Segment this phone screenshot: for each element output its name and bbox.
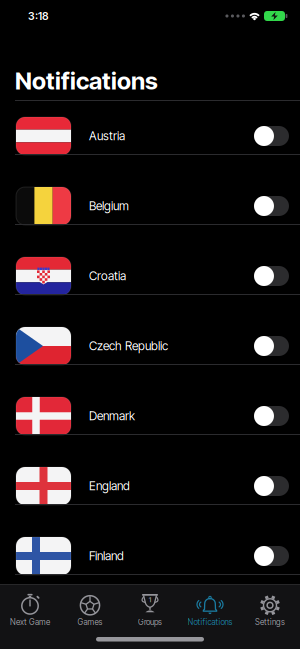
staticText: Notifications [15, 67, 158, 95]
staticText: 1 [149, 596, 152, 604]
button[interactable]: Croatia notifications [254, 266, 289, 286]
button[interactable]: Austria notifications [254, 126, 289, 146]
staticText: Czech Republic [89, 339, 168, 353]
button[interactable]: Finland notifications [254, 546, 289, 566]
staticText: Denmark [89, 409, 135, 423]
staticText: Notifications [187, 617, 232, 627]
button[interactable]: Notifications [180, 590, 240, 630]
staticText: Belgium [89, 199, 129, 213]
staticText: Groups [138, 617, 162, 627]
staticText: 3:18 [28, 10, 49, 22]
button[interactable]: Denmark notifications [254, 406, 289, 426]
staticText: Games [77, 617, 102, 627]
staticText: England [89, 479, 130, 493]
staticText: Settings [255, 617, 285, 627]
button[interactable]: Games [60, 590, 120, 630]
button[interactable]: Belgium notifications [254, 196, 289, 216]
staticText: Croatia [89, 269, 126, 283]
staticText: Austria [89, 129, 125, 143]
button[interactable]: 1 [120, 590, 180, 630]
button[interactable]: England notifications [254, 476, 289, 496]
staticText: Finland [89, 549, 124, 563]
staticText: Next Game [10, 617, 50, 627]
button[interactable]: Settings [240, 590, 300, 630]
button[interactable]: Czech Republic notifications [254, 336, 289, 356]
button[interactable]: Next Game [0, 590, 60, 630]
